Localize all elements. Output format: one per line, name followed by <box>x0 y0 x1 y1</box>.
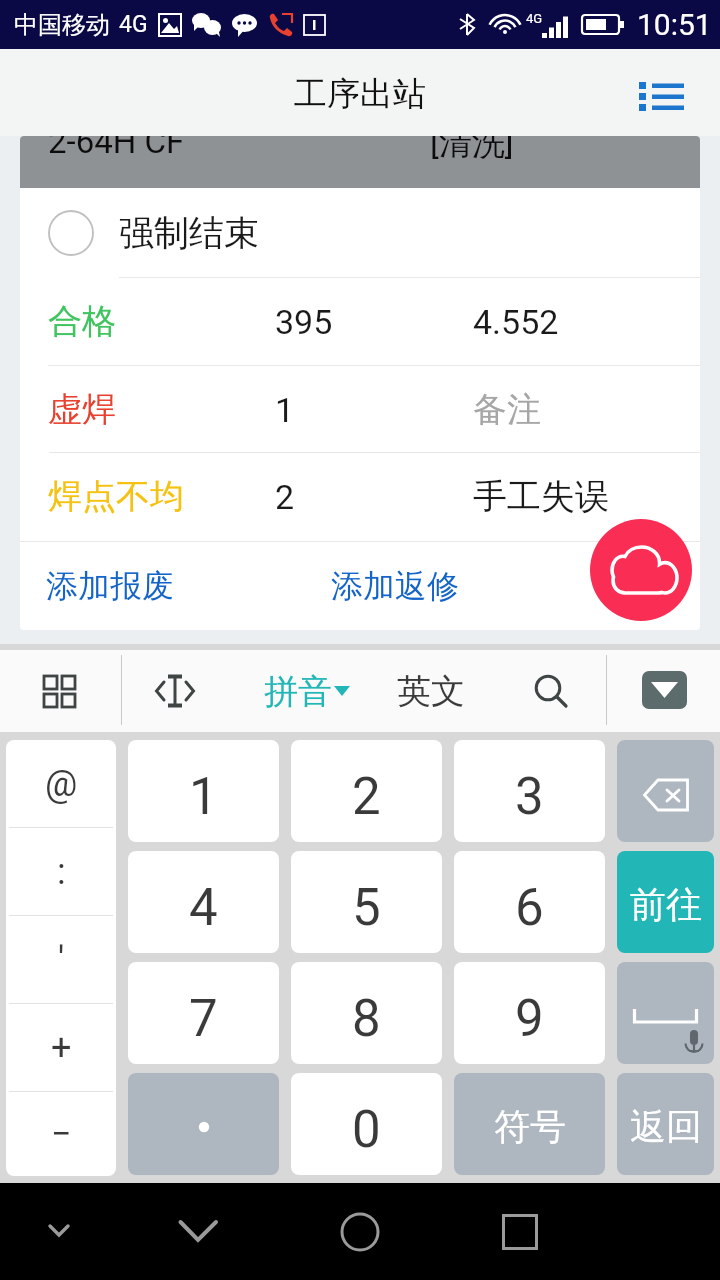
staticText: 2-64H CF <box>48 136 185 161</box>
button[interactable]: 9 <box>454 962 605 1064</box>
button[interactable]: Space <box>617 962 714 1064</box>
button[interactable]: 英文 <box>396 650 466 732</box>
button[interactable]: : <box>6 828 116 915</box>
button[interactable]: 返回 <box>617 1073 714 1175</box>
button[interactable]: Recent apps <box>465 1183 575 1280</box>
staticText: 添加返修 <box>331 566 459 606</box>
button[interactable]: Hide keyboard <box>9 1183 109 1280</box>
staticText: 虚焊 <box>48 388 116 431</box>
staticText: 4.552 <box>473 302 559 342</box>
staticText: 4G <box>526 11 543 26</box>
button[interactable]: ' <box>6 916 116 1003</box>
staticText: 手工失误 <box>473 475 609 518</box>
button[interactable]: Move cursor <box>136 650 214 732</box>
staticText: 前往 <box>630 882 702 927</box>
staticText: 焊点不均 <box>48 475 184 518</box>
staticText: @ <box>45 763 78 805</box>
staticText: 7 <box>189 989 218 1049</box>
button[interactable]: 符号 <box>454 1073 605 1175</box>
button[interactable]: 5 <box>291 851 442 953</box>
button[interactable]: 0 <box>291 1073 442 1175</box>
staticText: + <box>51 1027 72 1069</box>
button[interactable]: 前往 <box>617 851 714 953</box>
button[interactable]: 拼音 <box>264 650 350 732</box>
staticText: 英文 <box>397 670 465 713</box>
staticText: ' <box>58 939 65 981</box>
staticText: 8 <box>352 989 381 1049</box>
staticText: − <box>51 1113 72 1155</box>
button[interactable]: 添加返修 <box>331 542 551 630</box>
button[interactable]: @ <box>6 740 116 827</box>
button[interactable]: Home <box>305 1183 415 1280</box>
staticText: 备注 <box>473 388 541 431</box>
staticText: 10:51 <box>637 7 712 42</box>
staticText: 3 <box>515 767 544 827</box>
button[interactable]: 1 <box>128 740 279 842</box>
staticText: 2 <box>352 767 381 827</box>
button[interactable]: Back <box>144 1183 254 1280</box>
button[interactable]: 合格 <box>20 278 700 365</box>
button[interactable]: 3 <box>454 740 605 842</box>
staticText: : <box>57 851 66 893</box>
button[interactable]: − <box>6 1092 116 1176</box>
staticText: 中国移动 <box>14 10 110 40</box>
staticText: 工序出站 <box>294 73 426 115</box>
button[interactable]: + <box>6 1004 116 1091</box>
button[interactable]: Backspace <box>617 740 714 842</box>
button[interactable]: 2 <box>291 740 442 842</box>
button[interactable]: 7 <box>128 962 279 1064</box>
staticText: 9 <box>515 989 544 1049</box>
staticText: 1 <box>275 390 295 430</box>
button[interactable]: Menu <box>629 65 693 125</box>
staticText: 强制结束 <box>119 211 259 255</box>
staticText: 添加报废 <box>46 566 174 606</box>
staticText: 2 <box>275 477 295 517</box>
staticText: 合格 <box>48 300 116 343</box>
staticText: 返回 <box>630 1104 702 1149</box>
staticText: 395 <box>275 302 333 342</box>
button[interactable]: 4 <box>128 851 279 953</box>
staticText: 5 <box>352 878 381 938</box>
button[interactable]: Hide keyboard <box>642 671 687 709</box>
button[interactable]: 焊点不均 <box>20 453 700 540</box>
button[interactable]: Upload to cloud <box>590 519 692 621</box>
button[interactable]: 8 <box>291 962 442 1064</box>
button[interactable]: 强制结束 <box>20 188 700 277</box>
staticText: [清洗] <box>430 136 514 164</box>
button[interactable]: 虚焊 <box>20 366 700 453</box>
staticText: 4 <box>189 878 218 938</box>
button[interactable]: 添加报废 <box>20 542 331 630</box>
button[interactable] <box>128 1073 279 1175</box>
staticText: 0 <box>352 1100 381 1160</box>
staticText: 4G <box>119 11 148 38</box>
button[interactable]: Search <box>519 650 583 732</box>
staticText: 6 <box>515 878 544 938</box>
staticText: 拼音 <box>264 670 332 713</box>
staticText: 1 <box>189 767 218 827</box>
button[interactable]: Keyboard layouts <box>26 650 92 732</box>
staticText: 符号 <box>494 1104 566 1149</box>
button[interactable]: 6 <box>454 851 605 953</box>
